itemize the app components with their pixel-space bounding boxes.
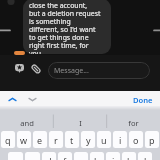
staticText: p [149, 134, 155, 146]
staticText: f [63, 155, 67, 160]
button[interactable]: Next field [25, 92, 39, 106]
button[interactable]: h [90, 152, 104, 160]
button[interactable]: l [138, 152, 152, 160]
staticText: for [128, 118, 139, 128]
button[interactable]: a [8, 152, 23, 160]
staticText: and [20, 118, 34, 128]
button[interactable]: i [113, 131, 127, 148]
button[interactable]: d [42, 152, 56, 160]
button[interactable]: y [81, 131, 95, 148]
button[interactable]: p [145, 131, 159, 148]
button[interactable]: e [33, 131, 47, 148]
staticText: q [5, 134, 11, 146]
staticText: I [79, 118, 82, 128]
button[interactable]: close the account, but a deletion reques… [23, 0, 111, 54]
staticText: l [144, 155, 147, 160]
staticText: Message... [54, 66, 89, 76]
staticText: w [20, 134, 28, 146]
button[interactable]: k [122, 152, 136, 160]
button[interactable]: t [65, 131, 79, 148]
button[interactable]: Previous field [5, 92, 19, 106]
staticText: u [101, 134, 107, 146]
button[interactable]: for [107, 110, 160, 135]
button[interactable]: f [58, 152, 72, 160]
button[interactable]: w [17, 131, 31, 148]
staticText: y [86, 134, 91, 146]
staticText: i [119, 134, 122, 146]
button[interactable]: I [54, 110, 107, 135]
button[interactable]: o [129, 131, 143, 148]
staticText: k [127, 155, 132, 160]
button[interactable]: r [49, 131, 63, 148]
button[interactable]: g [74, 152, 88, 160]
button[interactable]: Attach file [29, 62, 42, 75]
button[interactable]: s [25, 152, 40, 160]
staticText: e [37, 134, 43, 146]
button[interactable]: and [0, 110, 54, 135]
staticText: t [70, 134, 74, 146]
button[interactable]: Done [125, 91, 160, 106]
staticText: close the account, but a deletion reques… [29, 1, 101, 54]
button[interactable]: Message... [48, 62, 150, 79]
staticText: j [112, 155, 115, 160]
button[interactable]: j [106, 152, 120, 160]
staticText: d [46, 155, 52, 160]
button[interactable]: u [97, 131, 111, 148]
button[interactable]: Stickers [13, 62, 26, 75]
staticText: o [133, 134, 139, 146]
staticText: h [94, 155, 100, 160]
button[interactable]: q [1, 131, 15, 148]
staticText: Done [133, 95, 153, 105]
staticText: r [54, 134, 58, 146]
